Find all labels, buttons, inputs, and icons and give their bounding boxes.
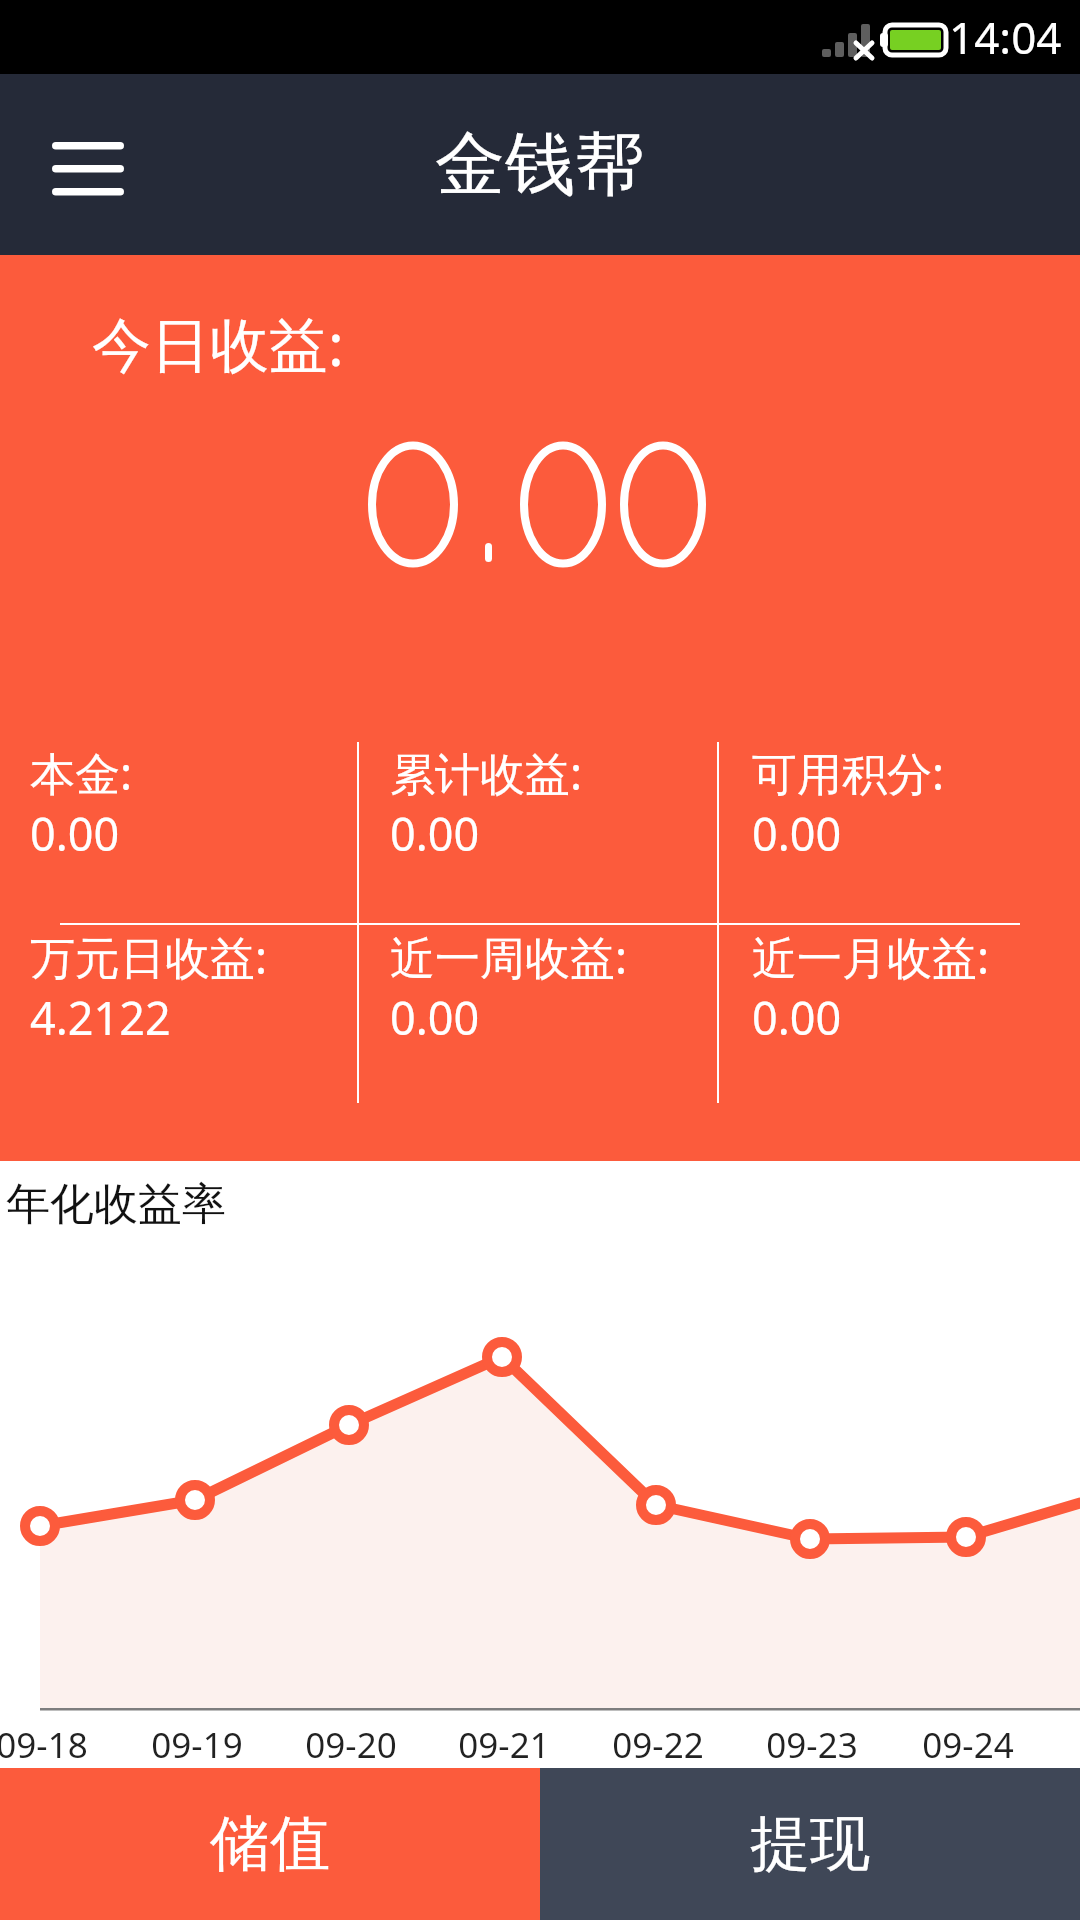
staticText: 09-22 (612, 1721, 704, 1769)
staticText: 09-23 (766, 1721, 858, 1769)
button[interactable]: 提现 (540, 1768, 1080, 1920)
staticText: 14:04 (949, 7, 1062, 67)
staticText: 近一月收益: (752, 926, 990, 987)
staticText: 可用积分: (752, 742, 945, 803)
staticText: 09-24 (922, 1721, 1014, 1769)
staticText: 储值 (210, 1806, 330, 1882)
staticText: 0.00 (390, 987, 480, 1048)
staticText: 累计收益: (390, 742, 583, 803)
staticText: 近一周收益: (390, 926, 628, 987)
staticText: 4.2122 (30, 987, 171, 1048)
staticText: 0.00 (30, 803, 120, 864)
button[interactable] (38, 115, 138, 215)
staticText: 本金: (30, 742, 133, 803)
staticText: 09-20 (305, 1721, 397, 1769)
staticText: 09-21 (458, 1721, 550, 1769)
staticText: 万元日收益: (30, 926, 268, 987)
staticText: 0.00 (752, 803, 842, 864)
staticText: 金钱帮 (435, 121, 645, 209)
staticText: 09-18 (0, 1721, 88, 1769)
staticText: 年化收益率 (6, 1177, 226, 1232)
staticText: 09-19 (151, 1721, 243, 1769)
staticText: 提现 (750, 1806, 870, 1882)
button[interactable]: 储值 (0, 1768, 540, 1920)
staticText: 0.00 (752, 987, 842, 1048)
staticText: 0.00 (390, 803, 480, 864)
staticText: 今日收益: (92, 303, 344, 384)
